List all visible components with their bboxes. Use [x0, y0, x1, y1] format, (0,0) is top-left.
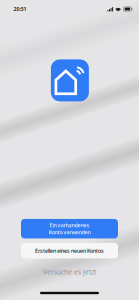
button[interactable]: Versuche es jetzt — [43, 268, 96, 276]
button[interactable]: Erstellen eines neuen Kontos — [21, 243, 118, 258]
button[interactable]: Ein vorhandenes — [21, 219, 118, 238]
staticText: Versuche es jetzt — [43, 268, 96, 276]
staticText: Ein vorhandenes — [49, 222, 89, 229]
staticText: 20:31 — [13, 5, 26, 13]
staticText: Konto verwenden — [48, 229, 90, 236]
staticText: Erstellen eines neuen Kontos — [35, 247, 104, 254]
